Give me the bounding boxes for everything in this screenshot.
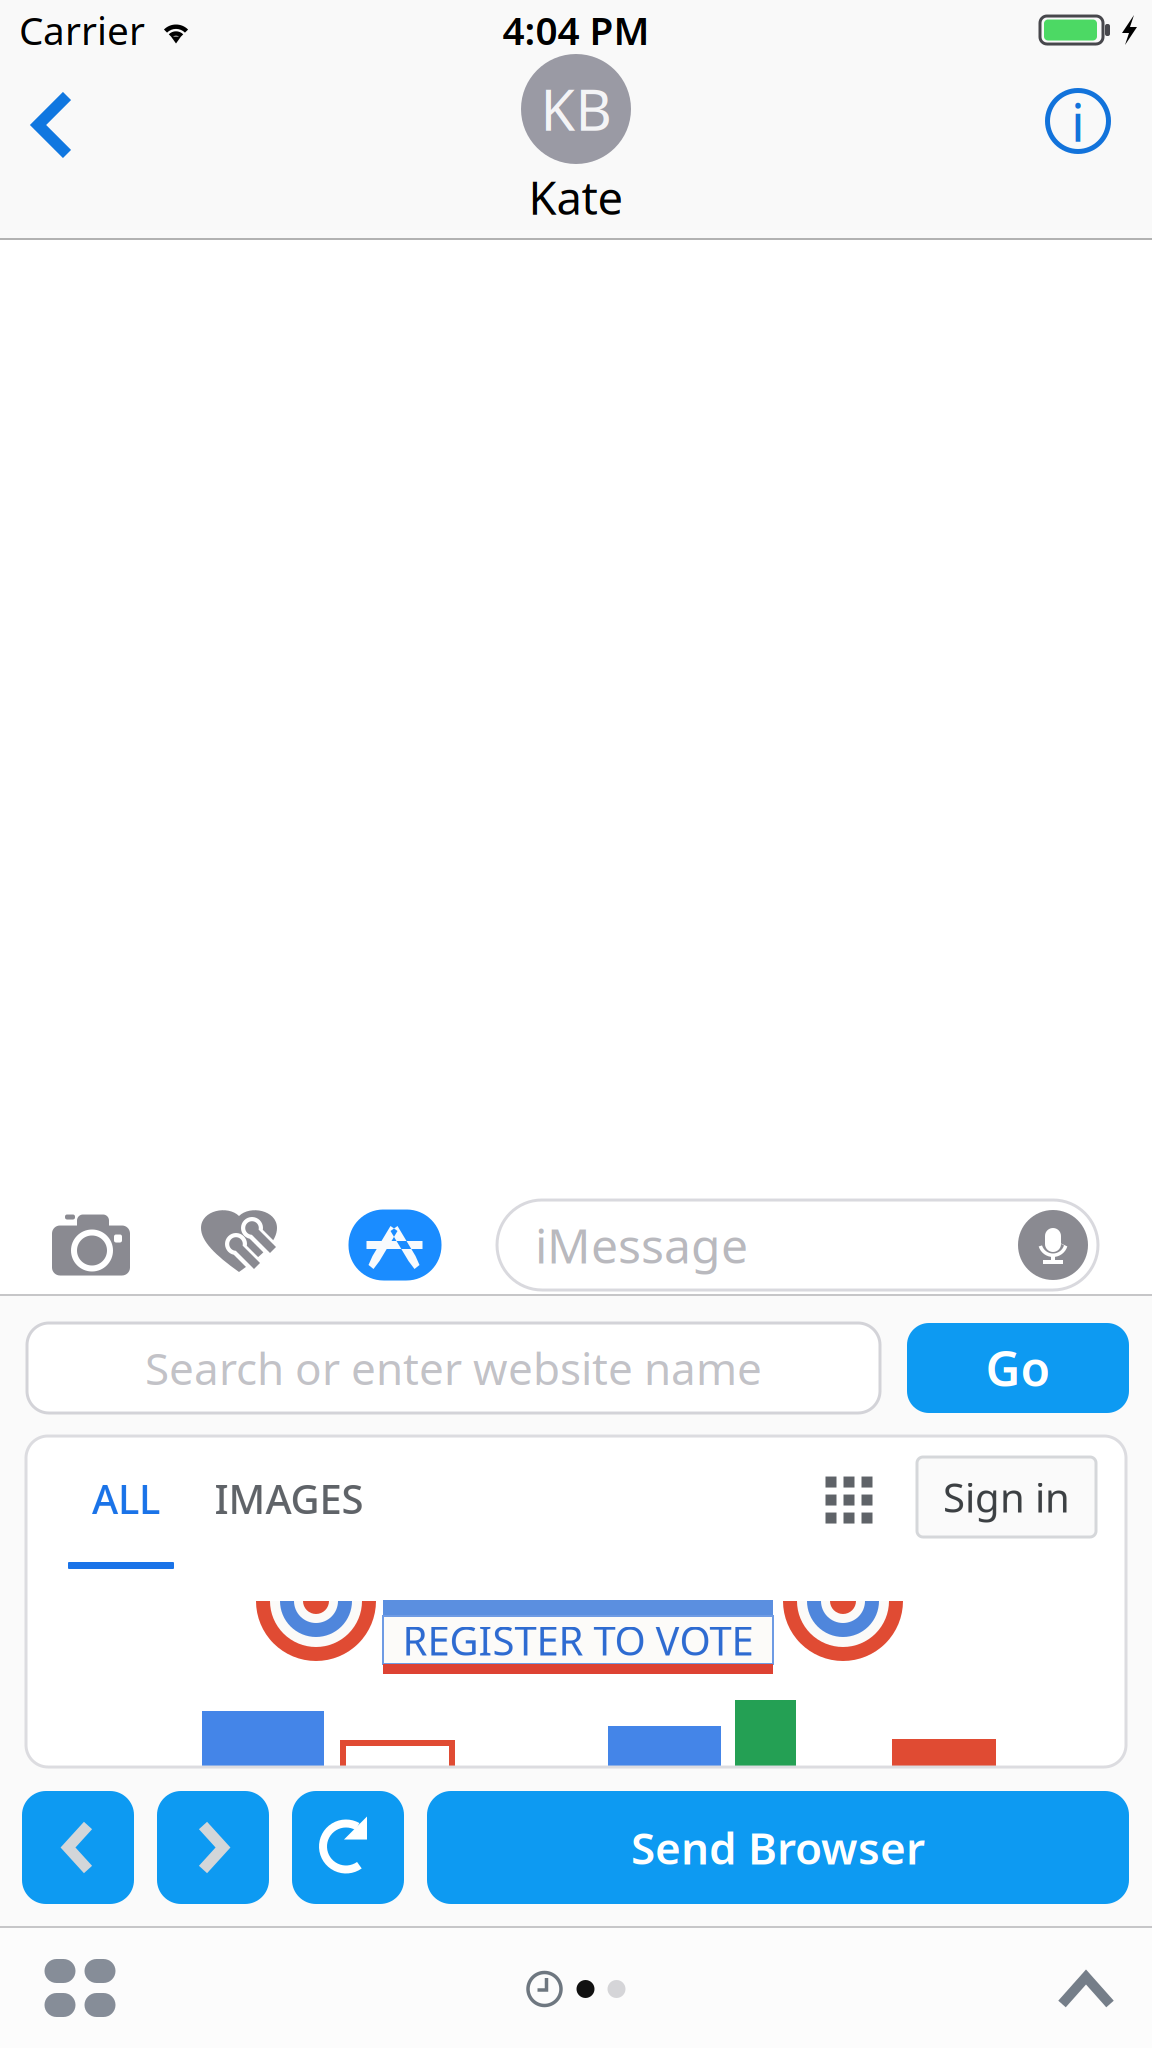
button[interactable]: IMAGES (219, 1436, 359, 1552)
button[interactable]: Go (907, 1323, 1129, 1413)
button[interactable]: KB (456, 54, 696, 227)
staticText: iMessage (535, 1213, 748, 1277)
button[interactable]: Back (22, 1791, 134, 1904)
staticText: Send Browser (631, 1818, 925, 1877)
staticText: Go (985, 1336, 1050, 1400)
button[interactable]: ALL (68, 1436, 174, 1576)
staticText: IMAGES (214, 1472, 363, 1525)
staticText: REGISTER TO VOTE (402, 1613, 753, 1666)
staticText: KB (540, 72, 611, 146)
button[interactable]: Camera (33, 1196, 149, 1294)
button[interactable]: Google apps (811, 1462, 887, 1538)
staticText: Carrier (19, 4, 145, 56)
staticText: Search or enter website name (145, 1339, 762, 1397)
staticText: Sign in (943, 1470, 1070, 1523)
button[interactable]: Expand (1024, 1930, 1148, 2048)
button[interactable]: Forward (157, 1791, 269, 1904)
button[interactable]: Reload (292, 1791, 404, 1904)
button[interactable]: Send Browser (427, 1791, 1129, 1904)
button[interactable]: App Store (337, 1196, 453, 1294)
staticText: ALL (92, 1472, 160, 1525)
button[interactable]: Digital Touch (181, 1196, 297, 1294)
staticText: 4:04 PM (502, 4, 649, 56)
button[interactable]: Dictate (1018, 1210, 1088, 1280)
staticText: Kate (528, 167, 623, 227)
button[interactable]: Search or enter website name (27, 1323, 880, 1413)
staticText: i (1071, 86, 1085, 156)
button[interactable]: Details (1026, 69, 1130, 173)
button[interactable]: Sign in (917, 1457, 1096, 1537)
button[interactable]: Apps (0, 1928, 160, 2048)
button[interactable]: Back (0, 73, 104, 177)
